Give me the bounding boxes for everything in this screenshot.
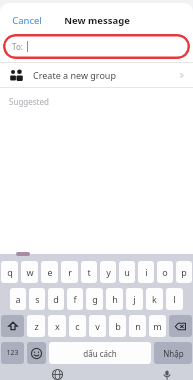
button[interactable]: Shift (1, 315, 24, 337)
button[interactable]: l (166, 288, 183, 310)
button[interactable]: h (106, 288, 123, 310)
button[interactable]: Create a new group (0, 63, 193, 87)
staticText: l (173, 293, 176, 305)
button[interactable]: k (146, 288, 163, 310)
staticText: i (145, 266, 148, 278)
button[interactable]: e (41, 261, 58, 283)
button[interactable]: m (149, 315, 166, 337)
button[interactable]: r (61, 261, 78, 283)
staticText: z (34, 320, 39, 332)
button[interactable]: dấu cách (49, 342, 151, 364)
staticText: a (15, 293, 21, 305)
staticText: x (55, 320, 60, 332)
staticText: g (92, 293, 98, 305)
button[interactable]: c (69, 315, 86, 337)
button[interactable]: j (126, 288, 143, 310)
staticText: r (68, 266, 72, 278)
staticText: dấu cách (83, 348, 117, 359)
staticText: v (95, 320, 100, 332)
button[interactable]: z (27, 315, 45, 337)
button[interactable]: p (176, 261, 192, 283)
staticText: Nhập (163, 348, 184, 359)
staticText: o (162, 266, 168, 278)
button[interactable]: w (21, 261, 38, 283)
button[interactable]: u (119, 261, 135, 283)
staticText: m (153, 320, 162, 332)
button[interactable]: b (109, 315, 126, 337)
button[interactable]: y (100, 261, 116, 283)
staticText: Cancel (12, 14, 42, 27)
staticText: s (35, 293, 40, 305)
staticText: To: (12, 41, 23, 52)
staticText: h (112, 293, 118, 305)
button[interactable]: i (138, 261, 154, 283)
button[interactable]: o (157, 261, 173, 283)
button[interactable]: Backspace (169, 315, 192, 337)
button[interactable]: n (129, 315, 146, 337)
button[interactable]: v (89, 315, 106, 337)
button[interactable]: t (81, 261, 97, 283)
staticText: j (133, 293, 136, 305)
staticText: y (106, 266, 111, 278)
button[interactable]: g (86, 288, 103, 310)
button[interactable]: q (1, 261, 18, 283)
button[interactable]: Nhập (154, 342, 192, 364)
button[interactable]: Cancel (9, 12, 45, 29)
button[interactable]: x (48, 315, 66, 337)
staticText: t (87, 266, 91, 278)
staticText: n (135, 320, 141, 332)
button[interactable]: Dictation (160, 369, 174, 380)
staticText: 123 (6, 348, 19, 358)
button[interactable]: a (10, 288, 26, 310)
staticText: c (75, 320, 80, 332)
staticText: New message (64, 14, 130, 27)
staticText: q (7, 266, 13, 278)
staticText: f (73, 293, 77, 305)
button[interactable]: Switch keyboard language (50, 369, 64, 380)
staticText: Suggested (9, 96, 49, 107)
staticText: p (181, 266, 187, 278)
staticText: e (47, 266, 53, 278)
button[interactable]: d (48, 288, 64, 310)
staticText: u (124, 266, 130, 278)
staticText: d (53, 293, 59, 305)
button[interactable]: To: (3, 34, 190, 59)
staticText: b (115, 320, 121, 332)
button[interactable]: f (67, 288, 83, 310)
button[interactable]: s (29, 288, 45, 310)
staticText: Create a new group (33, 69, 116, 81)
staticText: w (26, 266, 34, 278)
staticText: k (152, 293, 157, 305)
button[interactable]: Emoji (27, 342, 46, 364)
button[interactable]: 123 (1, 342, 24, 364)
